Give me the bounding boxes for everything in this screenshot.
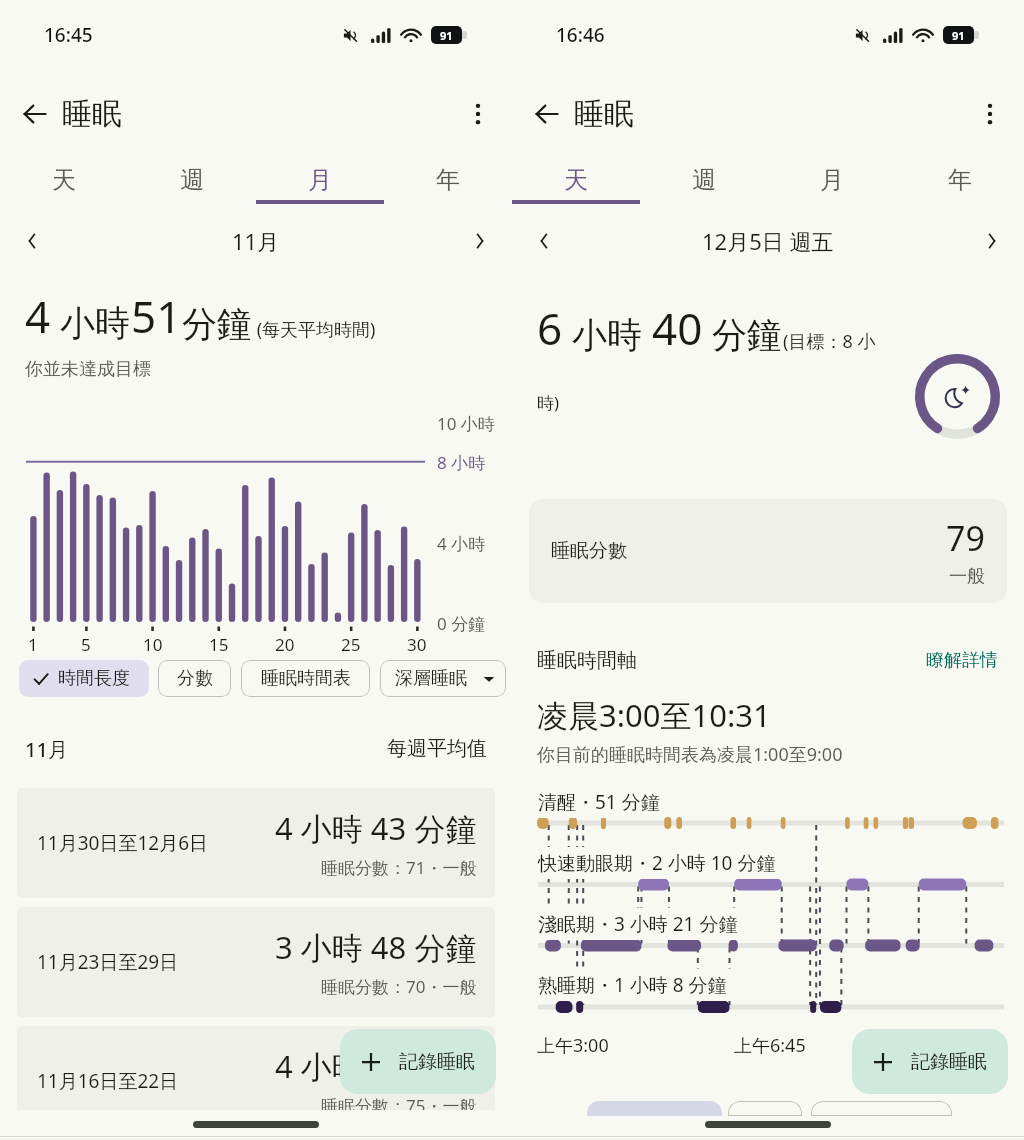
staticText: 睡眠分數：71・一般 — [321, 856, 477, 879]
staticText: 時間長度 — [58, 667, 130, 690]
staticText: 記錄睡眠 — [911, 1050, 987, 1074]
staticText: 瞭解詳情 — [926, 649, 998, 672]
button[interactable]: Score filter — [728, 1101, 802, 1116]
staticText: 你並未達成目標 — [25, 358, 151, 381]
button[interactable]: Previous — [526, 223, 562, 259]
staticText: 睡眠分數：75・一般 — [321, 1094, 477, 1117]
button[interactable]: Previous — [14, 223, 50, 259]
button[interactable]: More options — [964, 88, 1016, 140]
staticText: 凌晨3:00至10:31 — [537, 694, 771, 736]
staticText: 一般 — [949, 565, 985, 588]
staticText: 睡眠 — [62, 95, 122, 133]
staticText: 25 — [341, 633, 361, 656]
button[interactable]: 深層睡眠 — [380, 660, 506, 697]
staticText: 睡眠時間表 — [261, 667, 351, 690]
button[interactable]: 瞭解詳情 — [922, 645, 1002, 676]
staticText: 你目前的睡眠時間表為凌晨1:00至9:00 — [537, 742, 843, 767]
staticText: 睡眠分數 — [551, 539, 627, 563]
staticText: 8 小時 — [437, 451, 486, 474]
staticText: 淺眠期・3 小時 21 分鐘 — [538, 911, 738, 937]
staticText: (每天平均時間) — [252, 317, 376, 342]
button[interactable]: 睡眠時間表 — [241, 660, 370, 697]
staticText: 16:46 — [556, 22, 605, 48]
button[interactable]: Schedule filter — [811, 1101, 952, 1116]
button[interactable]: 記錄睡眠 — [852, 1029, 1008, 1094]
staticText: 10 小時 — [437, 412, 495, 435]
staticText: 10 — [143, 633, 163, 656]
staticText: 5 — [81, 633, 91, 656]
button[interactable]: 時間長度 — [19, 660, 149, 697]
button[interactable]: Next — [974, 223, 1010, 259]
staticText: 11月30日至12月6日 — [37, 830, 209, 856]
button[interactable]: 記錄睡眠 — [340, 1029, 496, 1094]
staticText: 睡眠時間軸 — [537, 648, 637, 673]
staticText: 記錄睡眠 — [399, 1050, 475, 1074]
button[interactable]: 年 — [896, 160, 1024, 200]
staticText: (目標：8 小 — [783, 329, 876, 354]
button[interactable]: 週 — [128, 160, 256, 200]
staticText: 91 — [952, 28, 965, 43]
staticText: 16:45 — [44, 22, 93, 48]
staticText: 分鐘 — [703, 310, 783, 358]
staticText: 月 — [308, 165, 332, 195]
staticText: 4 — [25, 286, 51, 346]
button[interactable]: 11月16日至22日 — [17, 1026, 495, 1136]
staticText: 20 — [275, 633, 295, 656]
staticText: 15 — [209, 633, 229, 656]
staticText: 上午3:00 — [537, 1033, 609, 1058]
staticText: 年 — [436, 165, 460, 195]
staticText: 1 — [28, 633, 38, 656]
staticText: 51 — [131, 286, 182, 346]
button[interactable]: More options — [452, 88, 504, 140]
staticText: 11月16日至22日 — [37, 1068, 179, 1094]
staticText: 年 — [948, 165, 972, 195]
button[interactable]: Duration filter — [587, 1101, 722, 1116]
staticText: 91 — [440, 28, 453, 43]
staticText: 週 — [180, 165, 204, 195]
staticText: 11月 — [232, 226, 280, 256]
staticText: 快速動眼期・2 小時 10 分鐘 — [538, 850, 776, 876]
staticText: 天 — [52, 165, 76, 195]
staticText: 週 — [692, 165, 716, 195]
staticText: 3 小時 48 分鐘 — [275, 926, 477, 968]
staticText: 時) — [537, 391, 560, 414]
staticText: 4 小時 43 分鐘 — [275, 807, 477, 849]
button[interactable]: 睡眠分數 — [529, 499, 1007, 603]
staticText: 月 — [820, 165, 844, 195]
staticText: 小時 — [51, 298, 131, 346]
staticText: 4 小時 12 分鐘 — [275, 1045, 477, 1087]
staticText: 天 — [564, 165, 588, 195]
button[interactable]: Next — [462, 223, 498, 259]
staticText: 深層睡眠 — [395, 667, 467, 690]
staticText: 40 — [652, 298, 703, 358]
staticText: 每週平均值 — [387, 736, 487, 761]
button[interactable]: 年 — [384, 160, 512, 200]
staticText: 79 — [946, 515, 985, 561]
staticText: 12月5日 週五 — [702, 226, 834, 256]
staticText: 睡眠分數：70・一般 — [321, 975, 477, 998]
button[interactable]: 月 — [256, 160, 384, 200]
staticText: 小時 — [563, 310, 652, 358]
staticText: 熟睡期・1 小時 8 分鐘 — [538, 972, 727, 998]
staticText: 分鐘 — [182, 302, 252, 346]
button[interactable]: 週 — [640, 160, 768, 200]
button[interactable]: 月 — [768, 160, 896, 200]
button[interactable]: Back — [523, 90, 571, 138]
button[interactable]: 11月30日至12月6日 — [17, 788, 495, 898]
staticText: 清醒・51 分鐘 — [538, 789, 660, 815]
staticText: 30 — [407, 633, 427, 656]
staticText: 上午6:45 — [734, 1033, 806, 1058]
staticText: 分數 — [177, 667, 213, 690]
button[interactable]: 11月23日至29日 — [17, 907, 495, 1017]
staticText: 0 分鐘 — [437, 612, 486, 635]
staticText: 睡眠 — [574, 95, 634, 133]
staticText: 4 小時 — [437, 532, 486, 555]
staticText: 11月23日至29日 — [37, 949, 179, 975]
button[interactable]: 天 — [0, 160, 128, 200]
button[interactable]: 分數 — [158, 660, 231, 697]
button[interactable]: 天 — [512, 160, 640, 200]
staticText: 6 — [537, 298, 563, 358]
staticText: 11月 — [25, 736, 68, 763]
button[interactable]: Back — [11, 90, 59, 138]
